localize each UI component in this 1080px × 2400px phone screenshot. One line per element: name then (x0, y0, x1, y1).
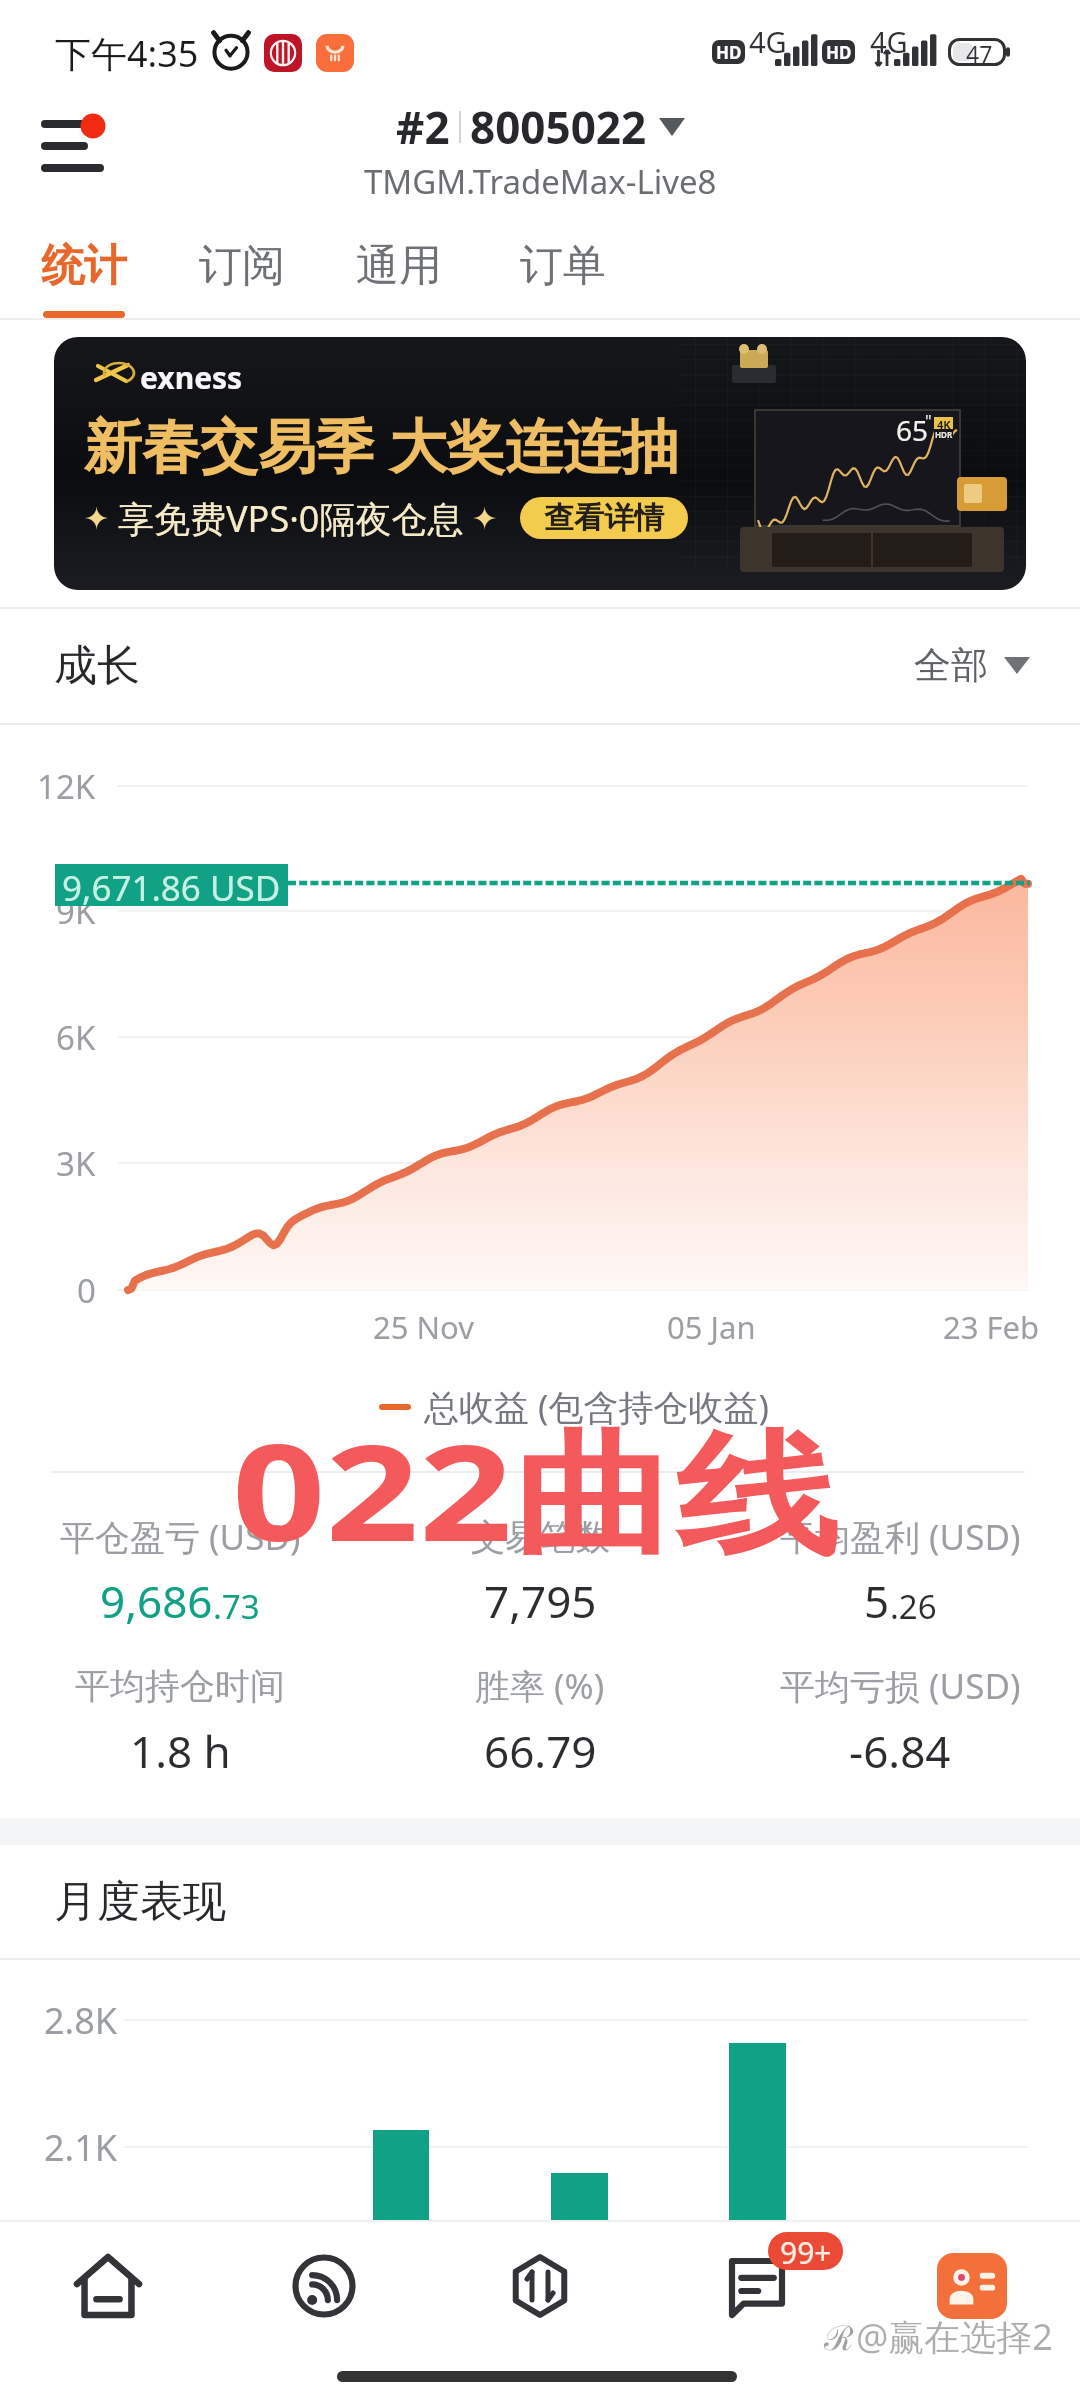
staticText: 66.79 (484, 1721, 597, 1781)
staticText: 查看详情 (544, 499, 664, 537)
staticText: 4K (937, 417, 951, 429)
staticText: 全部 (914, 642, 988, 689)
button[interactable]: Home (0, 2220, 216, 2352)
staticText: exness (140, 357, 243, 398)
staticText: 通用 (356, 239, 442, 293)
button[interactable]: Messages (648, 2220, 864, 2352)
staticText: 23 Feb (943, 1306, 1040, 1348)
button[interactable]: 统计 (41, 220, 127, 319)
staticText: ℛ (824, 2314, 854, 2360)
staticText: 022曲线 (232, 1400, 839, 1581)
staticText: 月度表现 (54, 1875, 226, 1929)
staticText: 7,795 (484, 1571, 597, 1631)
staticText: -6.84 (849, 1721, 951, 1781)
button[interactable]: 全部 (914, 642, 1030, 689)
staticText: 平均亏损 (USD) (780, 1662, 1021, 1710)
staticText: 平均盈利 (USD) (780, 1513, 1021, 1561)
staticText: 统计 (41, 239, 127, 293)
button[interactable]: Menu (30, 105, 114, 183)
staticText: 成长 (54, 639, 140, 693)
staticText: 8005022 (470, 97, 647, 157)
staticText: 2.1K (44, 2123, 118, 2171)
staticText: 5 (864, 1571, 890, 1631)
button[interactable]: 订阅 (199, 220, 285, 319)
staticText: 99+ (780, 2232, 832, 2270)
staticText: HD (826, 41, 852, 64)
staticText: 12K (37, 764, 96, 809)
staticText: HD (716, 41, 742, 64)
button[interactable]: Trade (432, 2220, 648, 2352)
staticText: ✦ (472, 501, 498, 536)
staticText: 胜率 (%) (475, 1662, 605, 1710)
staticText: 1.8 h (130, 1721, 231, 1781)
staticText: TMGM.TradeMax-Live8 (364, 159, 717, 204)
button[interactable]: 订单 (520, 220, 606, 319)
staticText: 9K (56, 889, 96, 934)
staticText: 05 Jan (667, 1306, 756, 1348)
staticText: 25 Nov (373, 1306, 474, 1348)
button[interactable]: 查看详情 (520, 497, 688, 539)
staticText: " (925, 410, 932, 432)
staticText: 交易笔数 (470, 1515, 610, 1559)
staticText: #2 (396, 97, 450, 157)
staticText: .26 (890, 1584, 937, 1629)
staticText: 订阅 (199, 239, 285, 293)
staticText: HDR (935, 429, 953, 439)
staticText: 新春交易季 大奖连连抽 (84, 405, 680, 484)
staticText: 订单 (520, 239, 606, 293)
staticText: 平仓盈亏 (USD) (60, 1513, 301, 1561)
staticText: 6K (56, 1015, 96, 1060)
staticText: 总收益 (包含持仓收益) (424, 1383, 770, 1431)
staticText: 2.8K (44, 1996, 118, 2044)
staticText: 4G (749, 22, 787, 61)
staticText: 0 (77, 1268, 96, 1313)
button[interactable]: Signals (216, 2220, 432, 2352)
staticText: 享免费VPS·0隔夜仓息 (118, 494, 464, 543)
button[interactable]: Profile (864, 2220, 1080, 2352)
button[interactable]: 通用 (356, 220, 442, 319)
staticText: @赢在选择2 (856, 2312, 1053, 2361)
staticText: 47 (966, 38, 993, 66)
staticText: 下午4:35 (55, 29, 199, 78)
staticText: .73 (213, 1584, 260, 1629)
button[interactable]: 65 (54, 337, 1026, 590)
staticText: 65 (896, 411, 929, 449)
staticText: 3K (56, 1141, 96, 1186)
staticText: 9,671.86 USD (62, 864, 281, 906)
staticText: 平均持仓时间 (75, 1664, 285, 1708)
staticText: 4G (870, 22, 908, 61)
staticText: ✦ (84, 501, 110, 536)
staticText: 9,686 (100, 1571, 213, 1631)
